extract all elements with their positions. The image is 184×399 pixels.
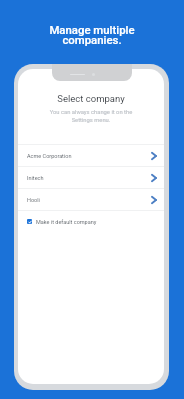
- button[interactable]: Initech: [18, 167, 164, 188]
- staticText: companies.: [0, 33, 184, 46]
- staticText: Hooli: [27, 197, 40, 203]
- button[interactable]: Hooli: [18, 189, 164, 210]
- button[interactable]: Acme Corporation: [18, 145, 164, 166]
- staticText: Manage multiple: [0, 23, 184, 36]
- staticText: You can always change it on the Settings…: [18, 109, 164, 123]
- button[interactable]: Make it default company: [18, 211, 164, 232]
- staticText: Select company: [18, 93, 164, 104]
- staticText: Initech: [27, 175, 44, 181]
- staticText: Make it default company: [36, 219, 97, 225]
- staticText: Acme Corporation: [27, 153, 72, 159]
